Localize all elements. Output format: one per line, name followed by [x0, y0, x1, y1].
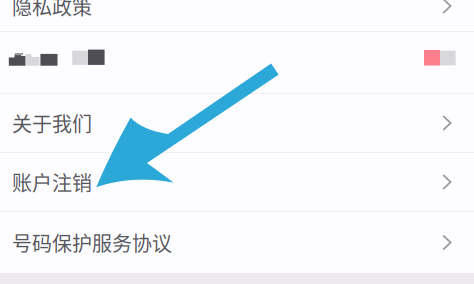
button[interactable]: [0, 32, 474, 93]
button[interactable]: 隐私政策: [0, 0, 474, 31]
button[interactable]: 号码保护服务协议: [0, 212, 474, 273]
staticText: 号码保护服务协议: [12, 228, 172, 257]
staticText: 关于我们: [12, 108, 92, 137]
staticText: 隐私政策: [12, 0, 92, 20]
staticText: 账户注销: [12, 167, 92, 196]
button[interactable]: 账户注销: [0, 153, 474, 211]
button[interactable]: 关于我们: [0, 94, 474, 152]
